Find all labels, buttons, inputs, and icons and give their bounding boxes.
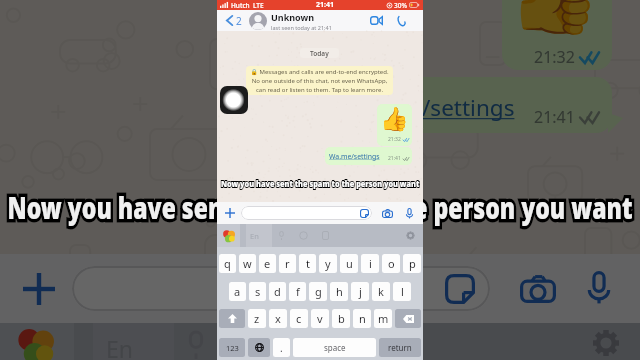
staticText: r (285, 256, 290, 271)
staticText: last seen today at 21:41 (271, 24, 332, 31)
staticText: d (274, 284, 281, 299)
button[interactable]: w (239, 254, 256, 273)
button[interactable]: v (311, 309, 329, 328)
staticText: b (338, 311, 345, 326)
button[interactable]: return (379, 338, 421, 357)
button[interactable]: z (248, 309, 266, 328)
button[interactable]: d (269, 282, 286, 301)
staticText: . (280, 341, 283, 355)
button[interactable]: h (330, 282, 348, 301)
staticText: t (306, 256, 310, 271)
button[interactable]: Sticker (241, 206, 372, 220)
staticText: 21:41 (316, 0, 334, 10)
button[interactable]: Attach (221, 202, 239, 224)
button[interactable]: Voice typing (270, 224, 292, 247)
button[interactable]: c (290, 309, 308, 328)
staticText: 21:41 (534, 106, 575, 128)
staticText: 21:32 (388, 136, 401, 143)
button[interactable]: 🔒 Messages and calls are end-to-end encr… (246, 66, 393, 95)
staticText: /settings (422, 92, 515, 123)
staticText: s (255, 284, 261, 299)
staticText: return (388, 342, 412, 353)
staticText: En (106, 333, 134, 360)
staticText: p (409, 256, 416, 271)
staticText: o (388, 256, 395, 271)
staticText: Now you have sent the spam to the person… (7, 186, 633, 227)
staticText: g (315, 284, 322, 299)
button[interactable]: t (299, 254, 316, 273)
button[interactable]: x (269, 309, 287, 328)
staticText: 👍 (508, 0, 601, 39)
staticText: Now you have sent the spam to the person… (221, 177, 420, 190)
staticText: 👍 (380, 106, 409, 133)
button[interactable]: Change language (248, 338, 270, 357)
button[interactable]: 2 (224, 10, 244, 31)
button[interactable]: u (340, 254, 358, 273)
button[interactable]: m (374, 309, 392, 328)
button[interactable]: Voice message (401, 202, 417, 224)
button[interactable]: Emoji keyboard (219, 224, 239, 247)
button[interactable]: Video call (368, 10, 385, 31)
staticText: k (378, 284, 384, 299)
button[interactable]: . (273, 338, 290, 357)
button[interactable]: 123 (219, 338, 245, 357)
staticText: Wa.me/settings (329, 152, 380, 161)
button[interactable]: 👍 (377, 104, 412, 146)
staticText: f (296, 284, 300, 299)
button[interactable]: l (393, 282, 411, 301)
staticText: 30% (394, 1, 407, 10)
staticText: 123 (226, 343, 239, 353)
button[interactable]: Camera (378, 202, 396, 224)
staticText: i (369, 256, 372, 271)
staticText: 21:32 (534, 46, 575, 68)
staticText: n (359, 311, 366, 326)
staticText: m (378, 311, 389, 326)
button[interactable]: Wa.me/settings (325, 147, 412, 165)
button[interactable]: Today (300, 48, 339, 58)
button[interactable]: r (279, 254, 296, 273)
button[interactable]: Backspace (395, 309, 421, 328)
button[interactable]: k (372, 282, 390, 301)
button[interactable]: g (309, 282, 327, 301)
button[interactable]: Unknown (249, 10, 332, 31)
staticText: c (296, 311, 302, 326)
button[interactable]: b (332, 309, 350, 328)
button[interactable]: j (351, 282, 369, 301)
staticText: v (317, 311, 323, 326)
staticText: u (346, 256, 353, 271)
staticText: 2 (236, 14, 242, 28)
button[interactable]: space (293, 338, 376, 357)
staticText: Now you have sent the spam to the person… (221, 177, 420, 190)
staticText: Today (310, 49, 329, 58)
button[interactable]: f (289, 282, 306, 301)
button[interactable]: Keyboard settings (401, 224, 419, 247)
staticText: z (254, 311, 260, 326)
button[interactable]: a (229, 282, 246, 301)
button[interactable]: Shift (219, 309, 245, 328)
button[interactable]: s (249, 282, 266, 301)
button[interactable]: Sticker (360, 209, 369, 218)
staticText: x (275, 311, 281, 326)
staticText: e (264, 256, 271, 271)
button[interactable]: p (403, 254, 421, 273)
staticText: Hutch (231, 1, 250, 10)
staticText: Unknown (271, 11, 315, 23)
staticText: j (359, 284, 362, 299)
staticText: a (234, 284, 241, 299)
staticText: 21:41 (388, 155, 401, 162)
staticText: w (243, 256, 252, 271)
button[interactable]: e (259, 254, 276, 273)
button[interactable]: i (361, 254, 379, 273)
button[interactable]: n (353, 309, 371, 328)
staticText: Now you have sent the spam to the person… (7, 186, 633, 227)
staticText: h (336, 284, 343, 299)
staticText: q (224, 256, 231, 271)
button[interactable]: Voice call (395, 10, 408, 31)
button[interactable]: y (319, 254, 337, 273)
button[interactable]: o (382, 254, 400, 273)
staticText: y (325, 256, 331, 271)
staticText: 🔒 Messages and calls are end-to-end encr… (249, 68, 390, 94)
button[interactable]: q (219, 254, 236, 273)
